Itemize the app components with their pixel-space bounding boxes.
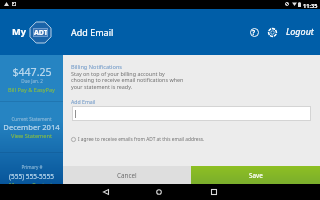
button[interactable]: View Statement xyxy=(0,132,63,140)
staticText: Primary # xyxy=(21,164,43,170)
staticText: Stay on top of your billing account by c… xyxy=(71,70,184,91)
button[interactable]: Home xyxy=(148,184,170,200)
staticText: December 2014 xyxy=(3,122,60,132)
staticText: 11:35 xyxy=(303,2,318,10)
button[interactable]: Back xyxy=(95,184,117,200)
button[interactable]: Settings xyxy=(264,24,280,40)
staticText: Manage Contacts xyxy=(9,181,55,189)
staticText: Add Email xyxy=(71,26,114,38)
staticText: (555) 555-5555 xyxy=(9,172,54,181)
button[interactable] xyxy=(72,106,311,121)
staticText: Bill Pay & EasyPay xyxy=(8,86,55,94)
button[interactable]: Bill Pay & EasyPay xyxy=(0,86,63,94)
button[interactable]: Recent apps xyxy=(203,184,225,200)
button[interactable]: I agree to receive emails from ADT at th… xyxy=(71,136,205,143)
button[interactable]: Logout xyxy=(286,25,314,37)
button[interactable]: Save xyxy=(191,166,320,184)
staticText: ? xyxy=(252,28,256,37)
staticText: Current Statement xyxy=(11,116,52,122)
staticText: Add Email xyxy=(71,98,96,105)
staticText: $447.25 xyxy=(12,65,52,79)
staticText: Cancel xyxy=(117,171,137,180)
staticText: Save xyxy=(249,171,263,180)
button[interactable]: Help xyxy=(246,24,262,40)
staticText: My xyxy=(12,25,26,38)
staticText: View Statement xyxy=(11,132,52,140)
staticText: I agree to receive emails from ADT at th… xyxy=(78,136,205,143)
button[interactable]: Cancel xyxy=(63,166,191,184)
staticText: Logout xyxy=(286,25,314,37)
staticText: ADT xyxy=(34,28,48,37)
button[interactable]: Manage Contacts xyxy=(0,181,63,189)
staticText: Billing Notifications xyxy=(71,63,123,71)
staticText: Due Jan. 2 xyxy=(21,78,43,84)
